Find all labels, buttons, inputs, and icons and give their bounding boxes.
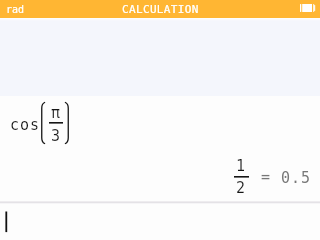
staticText: =: [261, 168, 272, 185]
button[interactable]: rad: [0, 0, 32, 18]
staticText: rad: [6, 4, 25, 16]
staticText: CALCULATION: [122, 3, 199, 16]
staticText: π: [51, 104, 62, 121]
staticText: cos: [10, 116, 41, 133]
button[interactable]: cos: [0, 96, 320, 202]
staticText: 0.5: [281, 169, 312, 186]
staticText: 3: [51, 127, 62, 144]
staticText: 1: [236, 157, 247, 174]
staticText: 2: [236, 179, 247, 196]
button[interactable]: Battery level: [296, 0, 320, 18]
button[interactable]: [0, 204, 320, 240]
